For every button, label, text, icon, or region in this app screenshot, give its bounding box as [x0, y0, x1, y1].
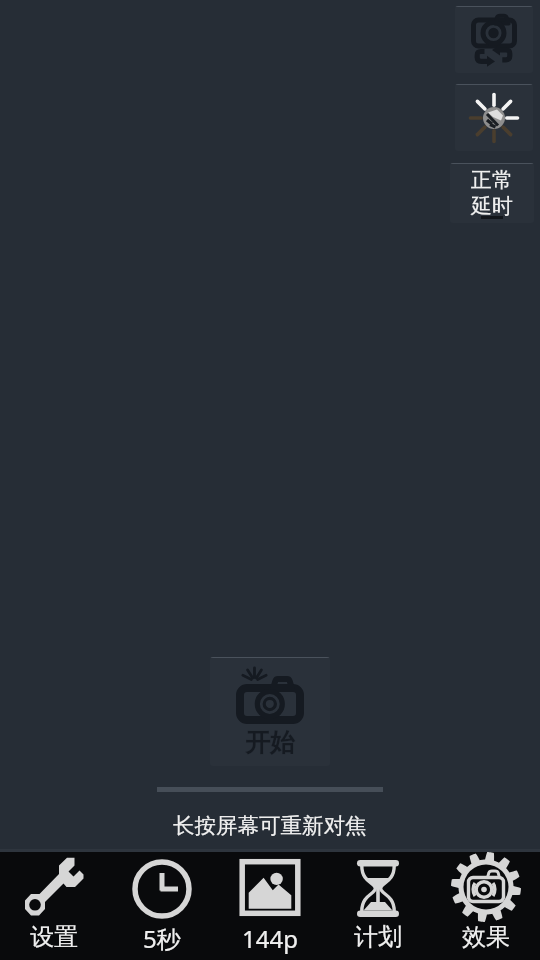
button[interactable]: 5秒: [108, 852, 216, 960]
staticText: 长按屏幕可重新对焦: [173, 812, 367, 839]
staticText: 144p: [242, 922, 298, 955]
staticText: 5秒: [143, 922, 181, 955]
staticText: 计划: [354, 922, 402, 952]
staticText: 开始: [245, 727, 295, 758]
staticText: 正常 延时: [471, 167, 513, 219]
button[interactable]: Switch camera: [455, 6, 533, 73]
staticText: 设置: [30, 922, 78, 952]
button[interactable]: 144p: [216, 852, 324, 960]
staticText: 效果: [462, 922, 510, 952]
button[interactable]: 效果: [432, 852, 540, 960]
button[interactable]: 正常 延时: [450, 163, 534, 223]
button[interactable]: Flash off: [455, 84, 533, 151]
button[interactable]: 开始: [210, 657, 330, 766]
button[interactable]: 设置: [0, 852, 108, 960]
button[interactable]: 计划: [324, 852, 432, 960]
